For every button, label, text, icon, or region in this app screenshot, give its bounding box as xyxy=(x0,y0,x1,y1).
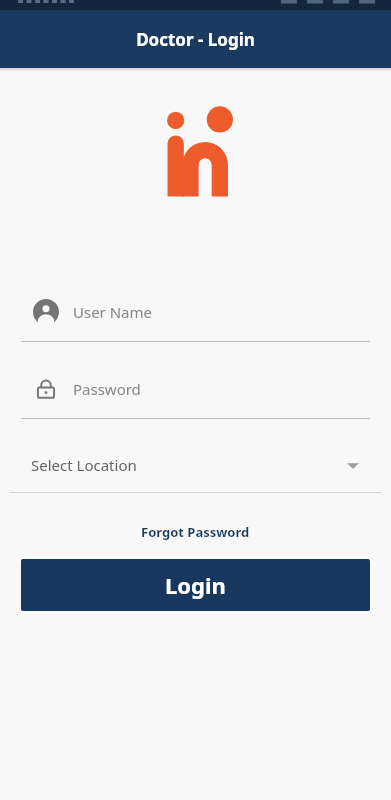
button[interactable]: Password xyxy=(0,371,391,407)
staticText: Doctor - Login xyxy=(136,28,255,51)
button[interactable]: Login xyxy=(21,559,370,611)
button[interactable]: User name xyxy=(0,294,391,330)
staticText: Forgot Password xyxy=(141,523,250,541)
staticText: Password xyxy=(73,379,141,399)
staticText: Login xyxy=(165,570,226,600)
staticText: Select Location xyxy=(31,455,137,475)
staticText: User Name xyxy=(73,302,153,322)
other: Password xyxy=(33,376,59,402)
button[interactable]: Forgot Password xyxy=(129,519,262,545)
other: Open location dropdown xyxy=(346,458,360,472)
button[interactable]: Select Location xyxy=(0,447,391,483)
other: User name xyxy=(33,299,59,325)
